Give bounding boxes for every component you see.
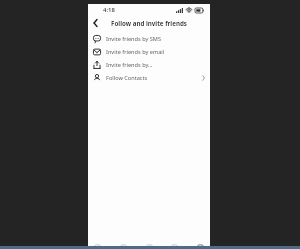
button[interactable]: Navigation item 3 (146, 240, 153, 247)
button[interactable]: Navigation item 4 (171, 240, 178, 247)
staticText: Follow and invite friends (111, 19, 187, 27)
button[interactable]: Invite friends by email (88, 45, 210, 58)
staticText: Invite friends by email (106, 48, 205, 56)
button[interactable]: Follow Contacts (88, 71, 210, 84)
staticText: Follow Contacts (106, 74, 202, 82)
staticText: Invite friends by SMS (106, 35, 205, 43)
button[interactable]: Invite friends by… (88, 58, 210, 71)
button[interactable]: Navigation item 5 (197, 240, 204, 247)
staticText: Invite friends by… (106, 61, 205, 69)
button[interactable]: Navigation item 2 (120, 240, 127, 247)
staticText: 4:18 (103, 6, 115, 14)
button[interactable]: Navigation item 1 (94, 240, 101, 247)
button[interactable]: Invite friends by SMS (88, 32, 210, 45)
button[interactable]: Back (88, 16, 102, 30)
